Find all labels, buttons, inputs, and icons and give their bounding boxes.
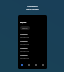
button[interactable]: Search (26, 62, 32, 68)
button[interactable]: Alerts (33, 62, 39, 68)
staticText: Inbox (20, 21, 27, 24)
staticText: Message (20, 47, 28, 49)
staticText: Message (20, 54, 28, 56)
button[interactable]: Profile (40, 62, 46, 68)
button[interactable]: Home (19, 62, 25, 68)
staticText: Message (20, 40, 28, 42)
staticText: Preview text (20, 57, 30, 59)
staticText: Message (20, 33, 28, 35)
staticText: Preview text (20, 36, 30, 38)
staticText: Supports (27, 4, 38, 7)
button[interactable]: Message (18, 39, 47, 46)
staticText: Preview text (20, 43, 30, 45)
button[interactable]: Message (18, 46, 47, 53)
button[interactable]: Message (18, 53, 47, 60)
button[interactable]: Search (20, 26, 30, 30)
staticText: Search (22, 27, 28, 29)
staticText: dark mode (26, 7, 39, 10)
button[interactable]: Message (18, 32, 47, 39)
staticText: Preview text (20, 50, 30, 52)
